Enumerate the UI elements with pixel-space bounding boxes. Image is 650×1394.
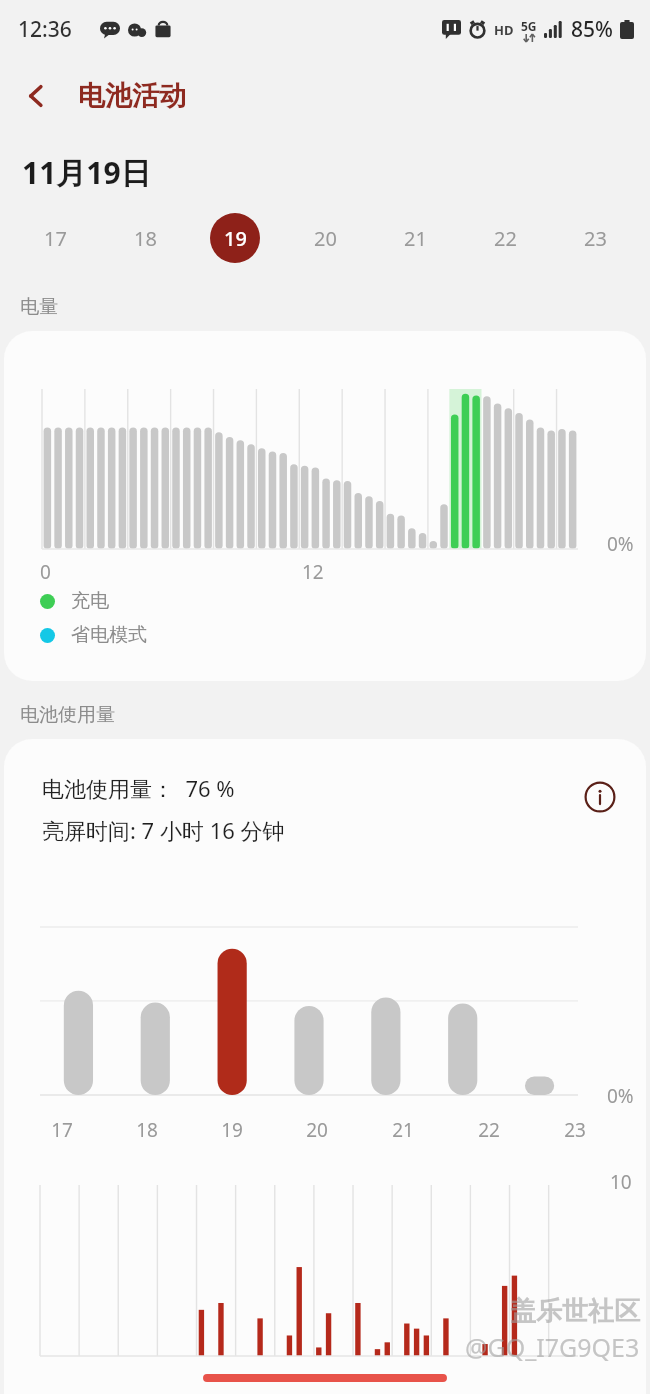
staticText: 充电 [71, 589, 109, 613]
staticText: 21 [404, 225, 427, 252]
staticText: 21 [392, 1117, 414, 1143]
staticText: 10 [610, 1169, 632, 1195]
staticText: 20 [306, 1117, 328, 1143]
staticText: 电池活动 [78, 79, 186, 113]
staticText: 电量 [20, 295, 58, 319]
staticText: 盖乐世社区 [510, 1295, 640, 1328]
staticText: 亮屏时间: 7 小时 16 分钟 [42, 815, 285, 845]
staticText: 85% [571, 15, 613, 44]
staticText: @GQ_I7G9QE3 [465, 1330, 640, 1364]
staticText: 18 [136, 1117, 158, 1143]
staticText: 22 [494, 225, 517, 252]
staticText: 23 [564, 1117, 586, 1143]
button[interactable]: Back [8, 68, 64, 124]
button[interactable]: 20 [280, 207, 370, 269]
button[interactable]: 17 [10, 207, 100, 269]
staticText: 19 [221, 1117, 243, 1143]
staticText: 20 [314, 225, 337, 252]
staticText: 电池使用量： 76 % [42, 773, 235, 803]
staticText: HD [494, 21, 514, 39]
button[interactable]: Info [576, 773, 624, 821]
staticText: 0% [607, 531, 634, 557]
staticText: 11月19日 [22, 152, 151, 193]
staticText: 17 [44, 225, 67, 252]
staticText: 电池使用量 [20, 703, 115, 727]
button[interactable]: 19 [190, 207, 280, 269]
staticText: 0% [607, 1083, 634, 1109]
staticText: 0 [40, 559, 51, 585]
button[interactable]: 0% [4, 331, 646, 681]
staticText: 省电模式 [71, 623, 147, 647]
button[interactable]: 22 [460, 207, 550, 269]
staticText: 18 [134, 225, 157, 252]
staticText: 12 [302, 559, 324, 585]
staticText: 12:36 [18, 15, 72, 44]
staticText: 23 [584, 225, 607, 252]
staticText: 17 [51, 1117, 73, 1143]
button[interactable]: 18 [100, 207, 190, 269]
staticText: 5G [521, 18, 537, 34]
staticText: 19 [224, 225, 247, 252]
button[interactable]: 21 [370, 207, 460, 269]
button[interactable]: 23 [550, 207, 640, 269]
staticText: 22 [478, 1117, 500, 1143]
